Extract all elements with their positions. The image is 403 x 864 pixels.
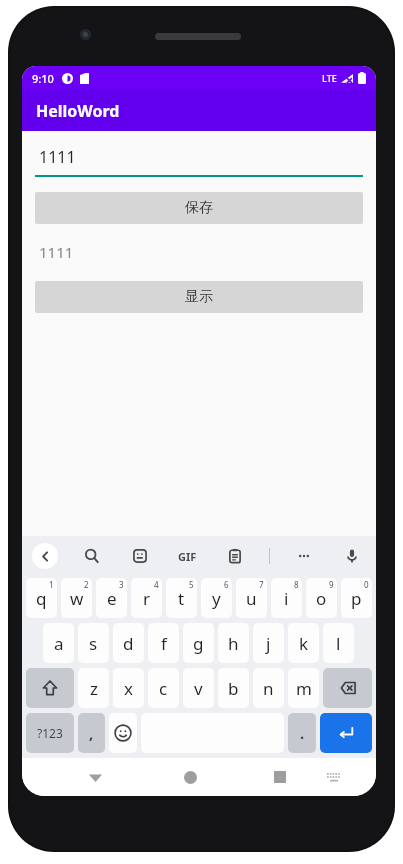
button[interactable]: Emoji	[109, 713, 137, 753]
button[interactable]: g	[183, 623, 214, 663]
button[interactable]: Clipboard	[221, 542, 249, 570]
staticText: s	[89, 632, 98, 655]
staticText: 6	[224, 579, 229, 590]
button[interactable]: More options	[290, 542, 318, 570]
staticText: t	[178, 587, 185, 610]
staticText: q	[36, 587, 47, 610]
staticText: n	[263, 677, 274, 700]
button[interactable]: o	[306, 578, 337, 618]
staticText: .	[300, 723, 305, 743]
button[interactable]: m	[288, 668, 319, 708]
staticText: 9	[329, 579, 334, 590]
button[interactable]: Home	[173, 760, 207, 794]
staticText: c	[159, 677, 168, 700]
staticText: 8	[294, 579, 299, 590]
staticText: o	[316, 587, 327, 610]
button[interactable]: Shift	[26, 668, 74, 708]
staticText: ?123	[37, 725, 63, 741]
staticText: u	[246, 587, 257, 610]
staticText: k	[299, 632, 309, 655]
staticText: j	[266, 632, 271, 655]
staticText: 5	[189, 579, 194, 590]
button[interactable]: l	[323, 623, 354, 663]
staticText: f	[161, 632, 167, 655]
button[interactable]: Stickers	[126, 542, 154, 570]
staticText: 0	[364, 579, 369, 590]
button[interactable]: h	[218, 623, 249, 663]
button[interactable]: i	[271, 578, 302, 618]
button[interactable]: GIF	[174, 545, 201, 568]
button[interactable]: .	[288, 713, 316, 753]
button[interactable]: u	[236, 578, 267, 618]
staticText: w	[70, 587, 84, 610]
staticText: 7	[259, 579, 264, 590]
button[interactable]: x	[113, 668, 144, 708]
staticText: 2	[84, 579, 89, 590]
staticText: a	[54, 632, 64, 655]
staticText: GIF	[178, 549, 197, 564]
button[interactable]: Search	[78, 542, 106, 570]
staticText: x	[124, 677, 133, 700]
staticText: l	[336, 632, 341, 655]
button[interactable]: f	[148, 623, 179, 663]
button[interactable]: e	[96, 578, 127, 618]
button[interactable]: 1111	[35, 146, 363, 177]
button[interactable]: j	[253, 623, 284, 663]
button[interactable]: d	[113, 623, 144, 663]
button[interactable]: Backspace	[323, 668, 372, 708]
button[interactable]: Back	[78, 760, 112, 794]
staticText: 9:10	[32, 71, 54, 86]
button[interactable]: r	[131, 578, 162, 618]
button[interactable]: Voice input	[338, 542, 366, 570]
button[interactable]: s	[78, 623, 109, 663]
staticText: 保存	[185, 199, 213, 217]
staticText: d	[123, 632, 134, 655]
staticText: y	[212, 587, 221, 610]
button[interactable]: k	[288, 623, 319, 663]
button[interactable]: q	[26, 578, 57, 618]
staticText: r	[143, 587, 151, 610]
staticText: 1111	[39, 146, 76, 168]
button[interactable]: Close toolbar	[32, 543, 58, 569]
staticText: 1	[49, 579, 54, 590]
staticText: ,	[89, 723, 94, 743]
button[interactable]: ?123	[26, 713, 74, 753]
button[interactable]: 保存	[35, 192, 363, 224]
button[interactable]: a	[43, 623, 74, 663]
button[interactable]: y	[201, 578, 232, 618]
staticText: 1111	[39, 242, 74, 262]
staticText: z	[90, 677, 98, 700]
staticText: m	[296, 677, 312, 700]
button[interactable]: Recents	[263, 760, 297, 794]
staticText: i	[284, 587, 289, 610]
staticText: 显示	[185, 288, 213, 306]
button[interactable]: Switch keyboard	[319, 762, 349, 792]
button[interactable]: b	[218, 668, 249, 708]
staticText: 3	[119, 579, 124, 590]
button[interactable]: z	[78, 668, 109, 708]
staticText: HelloWord	[36, 100, 120, 122]
staticText: p	[351, 587, 362, 610]
button[interactable]: c	[148, 668, 179, 708]
staticText: h	[228, 632, 239, 655]
staticText: g	[193, 632, 204, 655]
staticText: 4	[154, 579, 159, 590]
staticText: LTE	[322, 72, 337, 84]
button[interactable]: t	[166, 578, 197, 618]
button[interactable]: n	[253, 668, 284, 708]
button[interactable]: v	[183, 668, 214, 708]
staticText: v	[194, 677, 203, 700]
staticText: e	[107, 587, 117, 610]
button[interactable]: ,	[78, 713, 105, 753]
button[interactable]: p	[341, 578, 372, 618]
button[interactable]: w	[61, 578, 92, 618]
staticText: b	[228, 677, 239, 700]
button[interactable]: 显示	[35, 281, 363, 313]
button[interactable]: Enter	[320, 713, 372, 753]
